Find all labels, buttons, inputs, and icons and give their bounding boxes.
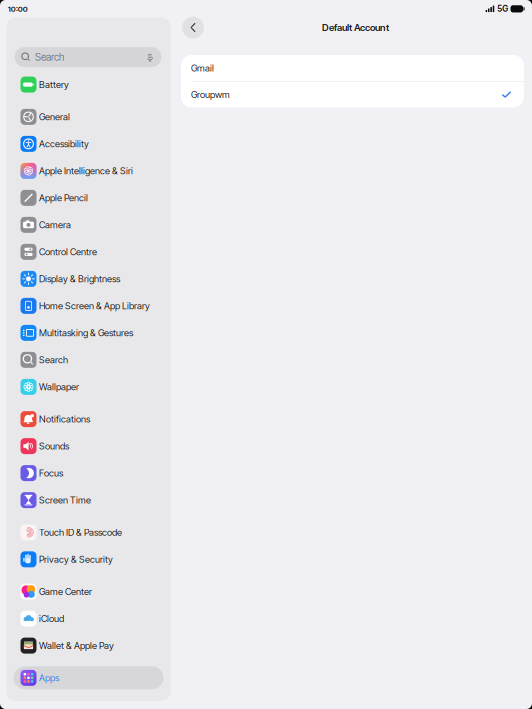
button[interactable]: Camera (13, 213, 163, 236)
button[interactable]: Battery (13, 73, 163, 96)
button[interactable]: Screen Time (13, 489, 163, 512)
button[interactable]: Touch ID & Passcode (13, 521, 163, 544)
button[interactable]: Game Center (13, 580, 163, 603)
staticText: Screen Time (39, 494, 91, 506)
button[interactable]: Gmail (181, 55, 524, 81)
staticText: Wallet & Apple Pay (39, 640, 114, 651)
staticText: Apple Intelligence & Siri (39, 165, 133, 176)
button[interactable]: iCloud (13, 607, 163, 630)
button[interactable]: Sounds (13, 435, 163, 458)
staticText: Battery (39, 79, 69, 90)
button[interactable]: Accessibility (13, 132, 163, 155)
staticText: Accessibility (39, 138, 89, 149)
button[interactable]: Focus (13, 462, 163, 485)
button[interactable]: Apple Intelligence & Siri (13, 159, 163, 182)
staticText: Control Centre (39, 246, 97, 257)
staticText: 5G (497, 4, 508, 14)
staticText: Home Screen & App Library (39, 300, 150, 311)
staticText: Default Account (322, 22, 389, 33)
button[interactable]: Privacy & Security (13, 548, 163, 571)
staticText: General (39, 111, 70, 122)
staticText: Camera (39, 219, 71, 230)
staticText: 10:00 (8, 4, 28, 13)
button[interactable]: Apple Pencil (13, 186, 163, 209)
button[interactable]: Search (13, 348, 163, 371)
staticText: Game Center (39, 586, 92, 597)
staticText: Multitasking & Gestures (39, 327, 133, 338)
staticText: Notifications (39, 413, 90, 425)
button[interactable]: Control Centre (13, 240, 163, 263)
staticText: Privacy & Security (39, 554, 113, 565)
staticText: Display & Brightness (39, 273, 120, 284)
staticText: Focus (39, 467, 63, 479)
staticText: Search (35, 51, 65, 63)
button[interactable]: Apps (13, 666, 163, 689)
staticText: Gmail (191, 62, 214, 74)
staticText: Search (39, 354, 68, 365)
button[interactable]: Back (182, 16, 204, 38)
staticText: Apple Pencil (39, 192, 88, 203)
button[interactable]: Multitasking & Gestures (13, 321, 163, 344)
button[interactable]: Display & Brightness (13, 267, 163, 290)
staticText: iCloud (39, 613, 64, 624)
staticText: Groupwm (191, 89, 230, 100)
button[interactable]: General (13, 105, 163, 128)
staticText: Apps (39, 672, 59, 683)
button[interactable]: Wallet & Apple Pay (13, 634, 163, 657)
staticText: Wallpaper (39, 381, 79, 392)
button[interactable]: Notifications (13, 408, 163, 431)
staticText: Sounds (39, 440, 69, 452)
button[interactable]: Groupwm (181, 82, 524, 108)
button[interactable]: Home Screen & App Library (13, 294, 163, 317)
staticText: Touch ID & Passcode (39, 527, 122, 538)
button[interactable]: Wallpaper (13, 375, 163, 398)
